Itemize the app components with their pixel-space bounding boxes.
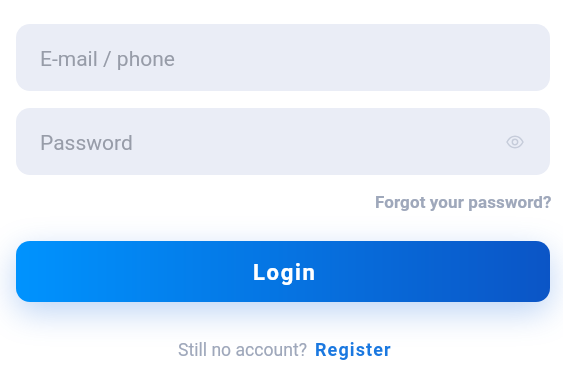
staticText: Register — [315, 339, 392, 360]
staticText: Password — [40, 131, 133, 156]
button[interactable]: Forgot your password? — [342, 183, 552, 215]
button[interactable]: Password — [16, 108, 550, 175]
button[interactable]: Login — [16, 241, 550, 302]
button[interactable]: Show password — [497, 124, 533, 160]
staticText: Forgot your password? — [375, 192, 552, 212]
staticText: E-mail / phone — [40, 47, 175, 72]
button[interactable]: Register — [315, 339, 392, 360]
button[interactable]: E-mail / phone — [16, 24, 550, 91]
staticText: Still no account? — [178, 340, 308, 361]
staticText: Login — [253, 260, 317, 286]
